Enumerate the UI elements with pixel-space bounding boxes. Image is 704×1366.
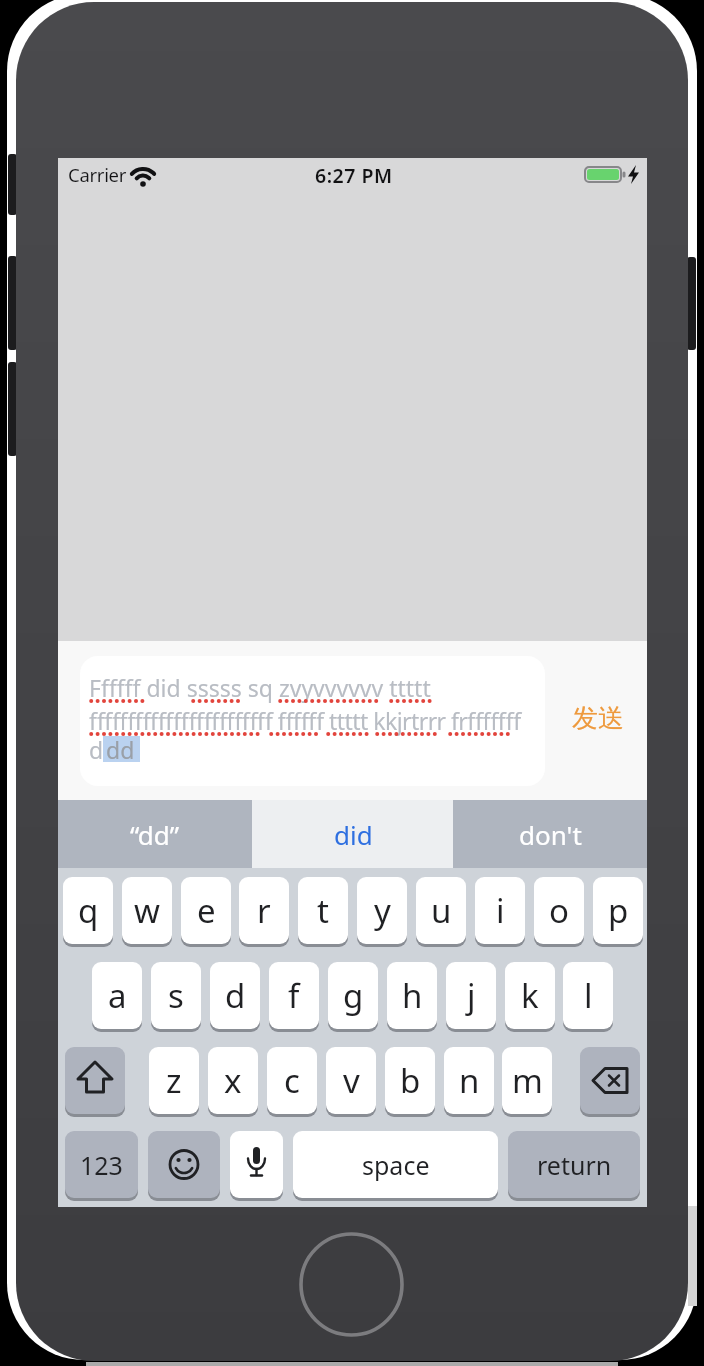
button[interactable]: t <box>298 877 348 944</box>
button[interactable]: x <box>208 1047 258 1114</box>
staticText: Carrier <box>68 162 127 187</box>
staticText: l <box>584 973 593 1018</box>
button[interactable]: m <box>502 1047 552 1114</box>
button[interactable]: o <box>534 877 584 944</box>
staticText: e <box>197 888 216 933</box>
staticText: Ffffff did sssss sq zvyvvvvvv ttttt <box>89 672 431 703</box>
staticText: return <box>537 1148 612 1182</box>
staticText: j <box>467 973 476 1018</box>
staticText: i <box>496 888 505 933</box>
staticText: c <box>284 1058 300 1103</box>
button[interactable]: i <box>475 877 525 944</box>
staticText: h <box>402 973 423 1018</box>
button[interactable] <box>580 1047 640 1114</box>
button[interactable]: g <box>328 962 378 1029</box>
button[interactable]: return <box>508 1131 640 1198</box>
staticText: t <box>317 888 329 933</box>
staticText: z <box>166 1058 182 1103</box>
button[interactable]: j <box>446 962 496 1029</box>
button[interactable]: c <box>267 1047 317 1114</box>
button[interactable]: v <box>326 1047 376 1114</box>
button[interactable]: p <box>593 877 643 944</box>
staticText: did <box>334 817 373 852</box>
staticText: m <box>512 1058 543 1103</box>
staticText: ffffffffffffffffffffffff ffffff ttttt kk… <box>89 705 521 736</box>
staticText: b <box>400 1058 421 1103</box>
staticText: d <box>89 734 104 765</box>
staticText: a <box>108 973 127 1018</box>
button[interactable]: l <box>563 962 613 1029</box>
button[interactable]: k <box>505 962 555 1029</box>
button[interactable] <box>65 1047 125 1114</box>
staticText: space <box>362 1148 430 1182</box>
button[interactable]: 发送 <box>563 696 633 741</box>
button[interactable]: d <box>210 962 260 1029</box>
button[interactable]: r <box>239 877 289 944</box>
button[interactable]: don't <box>453 800 647 868</box>
staticText: v <box>343 1058 360 1103</box>
staticText: don't <box>519 817 582 852</box>
button[interactable]: y <box>357 877 407 944</box>
button[interactable]: h <box>387 962 437 1029</box>
staticText: “dd” <box>130 817 180 852</box>
staticText: 发送 <box>572 702 624 735</box>
button[interactable]: q <box>63 877 113 944</box>
button[interactable]: e <box>181 877 231 944</box>
staticText: y <box>374 888 391 933</box>
button[interactable]: u <box>416 877 466 944</box>
button[interactable]: a <box>92 962 142 1029</box>
staticText: dd <box>106 734 135 765</box>
staticText: o <box>549 888 569 933</box>
staticText: f <box>288 973 300 1018</box>
button[interactable]: b <box>385 1047 435 1114</box>
staticText: x <box>224 1058 242 1103</box>
button[interactable]: “dd” <box>58 800 252 868</box>
staticText: g <box>343 973 364 1018</box>
button[interactable]: f <box>269 962 319 1029</box>
staticText: s <box>168 973 184 1018</box>
staticText: q <box>78 888 99 933</box>
staticText: n <box>459 1058 480 1103</box>
staticText: 6:27 PM <box>315 162 393 189</box>
staticText: r <box>257 888 271 933</box>
button[interactable] <box>80 656 545 786</box>
button[interactable]: 123 <box>65 1131 138 1198</box>
staticText: u <box>431 888 452 933</box>
button[interactable]: space <box>293 1131 498 1198</box>
button[interactable]: w <box>122 877 172 944</box>
staticText: d <box>225 973 246 1018</box>
staticText: 123 <box>80 1148 123 1182</box>
button[interactable]: s <box>151 962 201 1029</box>
button[interactable]: did <box>255 800 451 868</box>
button[interactable]: z <box>149 1047 199 1114</box>
button[interactable]: n <box>444 1047 494 1114</box>
button[interactable] <box>230 1131 283 1198</box>
staticText: p <box>608 888 629 933</box>
staticText: w <box>134 888 160 933</box>
button[interactable] <box>148 1131 220 1198</box>
staticText: k <box>521 973 539 1018</box>
